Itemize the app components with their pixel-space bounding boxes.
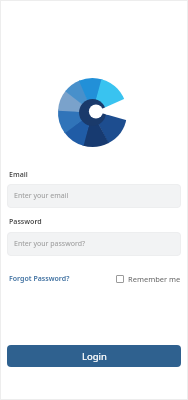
button[interactable]: Login — [7, 345, 181, 367]
staticText: Enter your password? — [14, 239, 86, 249]
staticText: Enter your email — [14, 191, 69, 201]
button[interactable]: Enter your email — [7, 184, 181, 208]
button[interactable]: Enter your password? — [7, 232, 181, 256]
staticText: Remember me — [128, 274, 181, 284]
button[interactable]: Remember me — [116, 274, 181, 284]
staticText: Email — [9, 170, 28, 180]
staticText: Login — [82, 350, 107, 363]
button[interactable]: Forgot Password? — [9, 274, 70, 284]
staticText: Password — [9, 217, 42, 227]
